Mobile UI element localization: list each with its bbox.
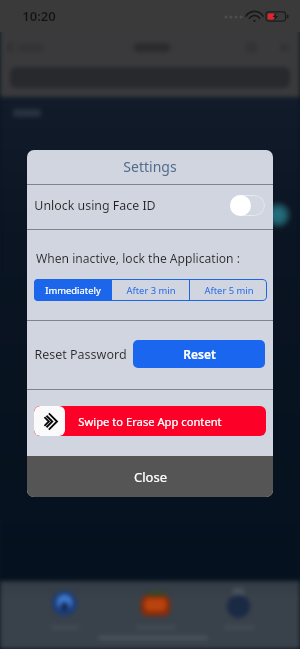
staticText: 10:20 <box>22 7 56 25</box>
staticText: Swipe to Erase App content <box>78 414 222 429</box>
button[interactable]: Reset <box>133 340 265 368</box>
button[interactable]: Immediately <box>34 279 111 301</box>
button[interactable]: Swipe to Erase App content <box>34 406 266 436</box>
button[interactable]: Library <box>128 585 184 633</box>
staticText: Close <box>134 468 167 486</box>
staticText: Immediately <box>45 284 101 297</box>
staticText: Unlock using Face ID <box>34 197 156 214</box>
button[interactable]: Unlock using Face ID toggle <box>230 195 265 216</box>
other: Swipe handle <box>34 406 65 436</box>
button[interactable]: After 3 min <box>112 279 189 301</box>
staticText: Settings <box>123 157 177 176</box>
button[interactable]: Close <box>27 456 273 497</box>
button[interactable]: Discover <box>40 585 90 633</box>
staticText: After 3 min <box>126 284 176 297</box>
staticText: When inactive, lock the Application : <box>36 250 240 266</box>
button[interactable]: Account <box>214 585 264 633</box>
staticText: Reset <box>183 346 216 362</box>
button[interactable]: After 5 min <box>190 279 267 301</box>
staticText: After 5 min <box>204 284 254 297</box>
staticText: Reset Password <box>34 346 127 363</box>
